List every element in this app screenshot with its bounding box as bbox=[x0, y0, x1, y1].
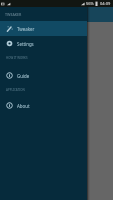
staticText: Guide bbox=[17, 73, 30, 79]
staticText: TWEAKER bbox=[5, 12, 22, 17]
button[interactable]: Tweaker bbox=[0, 21, 87, 36]
button[interactable]: Settings bbox=[0, 36, 87, 51]
staticText: 56% bbox=[86, 1, 94, 6]
button[interactable]: About bbox=[0, 98, 87, 113]
staticText: APPLICATION bbox=[6, 88, 25, 92]
staticText: About bbox=[17, 103, 30, 109]
button[interactable]: Guide bbox=[0, 68, 87, 83]
staticText: Tweaker bbox=[17, 26, 35, 32]
staticText: HOW IT WORKS bbox=[6, 56, 28, 60]
staticText: Settings bbox=[17, 41, 34, 47]
staticText: 04:09 bbox=[100, 1, 111, 6]
